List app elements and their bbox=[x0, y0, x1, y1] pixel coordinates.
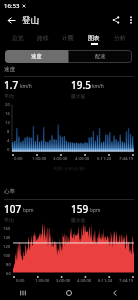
staticText: 3:00:00 bbox=[53, 156, 68, 162]
staticText: 6:11:24 bbox=[98, 278, 113, 284]
button[interactable]: Home bbox=[46, 286, 92, 300]
staticText: 7:44:19 bbox=[119, 156, 134, 162]
staticText: km/h bbox=[92, 83, 104, 90]
button[interactable]: 总览 bbox=[5, 31, 30, 46]
staticText: 60 bbox=[6, 271, 11, 277]
staticText: 0 bbox=[7, 147, 10, 153]
button[interactable]: Recent apps bbox=[0, 286, 46, 300]
staticText: 12 bbox=[5, 120, 10, 126]
staticText: 平均 bbox=[4, 217, 14, 223]
button[interactable]: Back bbox=[0, 12, 22, 28]
staticText: 107 bbox=[4, 202, 22, 216]
staticText: 速度 bbox=[31, 53, 42, 60]
staticText: bpm bbox=[90, 207, 101, 214]
staticText: 1.7 bbox=[4, 78, 19, 92]
staticText: bpm bbox=[23, 207, 34, 214]
staticText: 总览 bbox=[12, 34, 24, 41]
staticText: 4 bbox=[7, 138, 10, 144]
staticText: 80 bbox=[6, 262, 11, 268]
staticText: 时间 (小时:分:秒) bbox=[54, 166, 85, 172]
staticText: 心率 bbox=[4, 188, 15, 195]
staticText: 120 bbox=[3, 244, 11, 250]
staticText: 3:00:00 bbox=[56, 278, 71, 284]
staticText: 159 bbox=[71, 202, 89, 216]
staticText: 登山 bbox=[22, 15, 39, 26]
staticText: 最大值 bbox=[71, 93, 86, 99]
staticText: 16 bbox=[5, 111, 10, 117]
staticText: 配速 bbox=[95, 53, 106, 60]
button[interactable]: 计圈 bbox=[55, 31, 81, 46]
staticText: 平均 bbox=[4, 93, 14, 99]
staticText: 0:00 bbox=[16, 278, 25, 284]
staticText: 计圈 bbox=[62, 34, 74, 41]
staticText: 7:44:19 bbox=[119, 278, 134, 284]
button[interactable]: 图表 bbox=[81, 31, 107, 46]
button[interactable]: 分析 bbox=[107, 31, 133, 46]
staticText: 160 bbox=[3, 226, 11, 232]
staticText: 20 bbox=[5, 102, 10, 108]
staticText: 速度 bbox=[4, 66, 15, 73]
staticText: 1:30:00 bbox=[32, 156, 47, 162]
button[interactable]: Share bbox=[108, 12, 124, 28]
button[interactable]: 配速 bbox=[68, 50, 132, 63]
staticText: 19.5 bbox=[71, 78, 91, 92]
staticText: 4:30:00 bbox=[75, 156, 90, 162]
button[interactable]: Back bbox=[92, 286, 138, 300]
staticText: 最大值 bbox=[71, 217, 86, 223]
staticText: 8 bbox=[7, 129, 10, 135]
staticText: 分析 bbox=[114, 34, 126, 41]
staticText: 140 bbox=[3, 235, 11, 241]
staticText: 0:00 bbox=[14, 156, 23, 162]
staticText: 路线 bbox=[37, 34, 49, 41]
staticText: 图表 bbox=[88, 34, 100, 41]
staticText: 4:30:00 bbox=[77, 278, 92, 284]
staticText: 1:30:00 bbox=[35, 278, 50, 284]
button[interactable]: 路线 bbox=[30, 31, 55, 46]
staticText: 16:53 bbox=[4, 2, 20, 10]
staticText: km/h bbox=[20, 83, 32, 90]
staticText: 100 bbox=[3, 253, 11, 259]
button[interactable]: 速度 bbox=[5, 50, 68, 63]
button[interactable]: More options bbox=[124, 12, 138, 28]
staticText: 6:11:24 bbox=[97, 156, 112, 162]
